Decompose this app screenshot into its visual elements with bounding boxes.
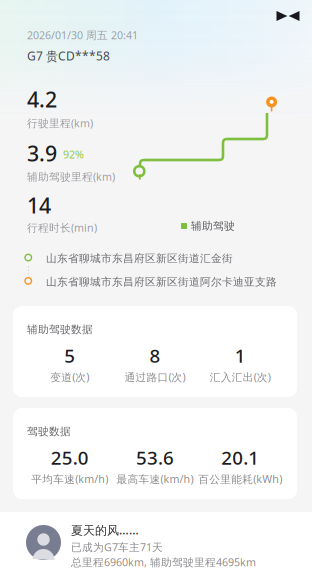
staticText: 行程时长(min) [27,220,97,235]
staticText: 百公里能耗(kWh) [198,472,282,486]
staticText: 53.6 [136,445,174,470]
staticText: 夏天的风…… [71,522,139,538]
staticText: 通过路口(次) [124,370,185,384]
staticText: 辅助驾驶数据 [27,323,93,336]
button[interactable]: 分享 [276,8,300,24]
staticText: 辅助驾驶 [191,219,235,233]
button[interactable]: 夏天的风…… [0,512,312,588]
staticText: 行驶里程(km) [27,116,93,130]
staticText: 25.0 [51,445,89,470]
staticText: 已成为G7车主71天 [71,540,163,554]
staticText: 5 [64,343,75,368]
staticText: 山东省聊城市东昌府区新区街道汇金街 [46,252,233,265]
staticText: 总里程6960km, 辅助驾驶里程4695km [71,555,256,569]
staticText: 最高车速(km/h) [116,472,193,486]
staticText: G7 贵CD***58 [27,48,110,64]
staticText: 1 [235,343,246,368]
staticText: 20.1 [221,445,259,470]
staticText: 92% [63,147,84,161]
staticText: 2026/01/30 周五 20:41 [27,28,138,42]
staticText: 汇入汇出(次) [210,370,271,384]
staticText: 3.9 [27,139,57,167]
staticText: 8 [149,343,160,368]
staticText: 4.2 [27,85,57,113]
staticText: 辅助驾驶里程(km) [27,169,115,184]
staticText: 变道(次) [50,370,89,384]
staticText: 山东省聊城市东昌府区新区街道阿尔卡迪亚支路 [46,275,277,289]
staticText: 驾驶数据 [27,425,71,438]
staticText: 平均车速(km/h) [31,472,108,486]
staticText: 14 [27,191,51,219]
